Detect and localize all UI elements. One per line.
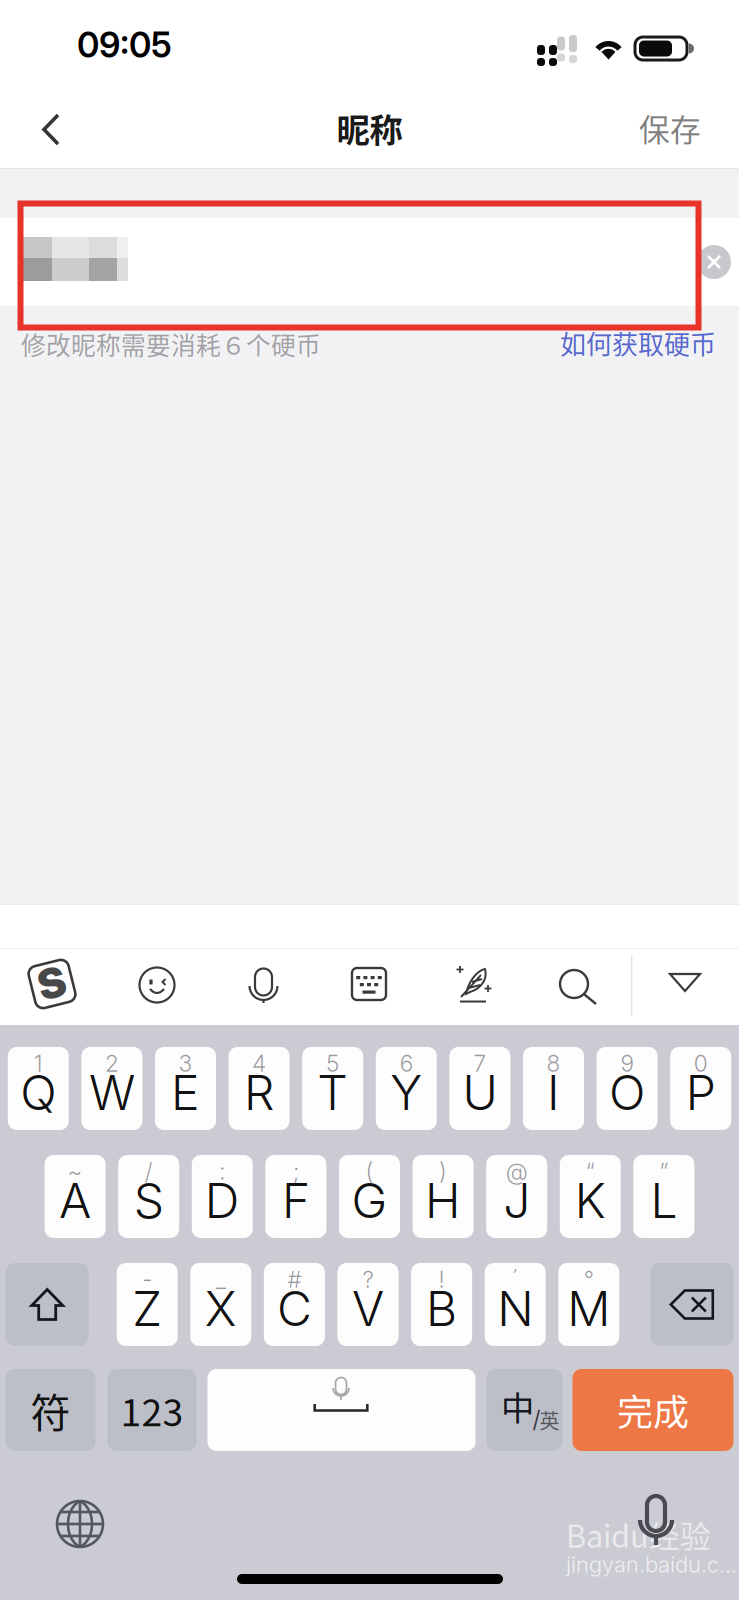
button[interactable]: ; xyxy=(265,1155,326,1238)
button[interactable]: ´ xyxy=(485,1263,546,1346)
staticText: ( xyxy=(365,1158,373,1185)
button[interactable]: 1 xyxy=(8,1047,69,1130)
staticText: B xyxy=(426,1279,457,1338)
button[interactable]: 8 xyxy=(523,1047,584,1130)
staticText: 如何获取硬币 xyxy=(560,324,716,362)
staticText: 8 xyxy=(546,1050,560,1077)
button[interactable]: Space xyxy=(207,1369,475,1451)
button[interactable]: 如何获取硬币 xyxy=(556,325,716,361)
button[interactable] xyxy=(650,1263,733,1346)
staticText: 中 xyxy=(501,1382,534,1430)
staticText: P xyxy=(686,1063,716,1122)
staticText: 完成 xyxy=(617,1384,689,1436)
staticText: jingyan.baidu.com xyxy=(566,1551,739,1578)
staticText: V xyxy=(352,1279,384,1338)
staticText: ” xyxy=(659,1158,668,1185)
button[interactable]: ) xyxy=(413,1155,474,1238)
button[interactable]: - xyxy=(117,1263,178,1346)
button[interactable]: Voice input xyxy=(249,965,279,1004)
button[interactable]: Back xyxy=(38,105,94,161)
button[interactable]: 6 xyxy=(376,1047,437,1130)
button[interactable]: 4 xyxy=(229,1047,290,1130)
button[interactable]: : xyxy=(192,1155,253,1238)
button[interactable]: Clear text xyxy=(690,238,738,286)
staticText: “ xyxy=(586,1158,595,1185)
button[interactable]: Sogou input method xyxy=(27,959,77,1009)
staticText: W xyxy=(89,1063,135,1122)
button[interactable]: Search xyxy=(558,968,598,1006)
staticText: ! xyxy=(439,1266,445,1293)
staticText: ) xyxy=(439,1158,447,1185)
button[interactable]: # xyxy=(264,1263,325,1346)
button[interactable]: 123 xyxy=(107,1369,196,1451)
button[interactable]: 符 xyxy=(5,1369,95,1451)
button[interactable] xyxy=(6,1263,89,1346)
button[interactable]: ~ xyxy=(45,1155,106,1238)
button[interactable]: @ xyxy=(486,1155,547,1238)
staticText: C xyxy=(277,1279,312,1338)
staticText: / xyxy=(145,1158,153,1185)
staticText: ´ xyxy=(512,1266,519,1293)
staticText: 5 xyxy=(326,1050,339,1077)
staticText: ~ xyxy=(68,1158,83,1185)
staticText: K xyxy=(575,1171,606,1230)
button[interactable]: 0 xyxy=(670,1047,731,1130)
staticText: S xyxy=(38,958,66,1008)
button[interactable]: 5 xyxy=(302,1047,363,1130)
staticText: 6 xyxy=(400,1050,413,1077)
button[interactable]: ” xyxy=(633,1155,694,1238)
staticText: 7 xyxy=(473,1050,486,1077)
staticText: @ xyxy=(506,1158,528,1185)
staticText: G xyxy=(351,1171,387,1230)
staticText: R xyxy=(244,1063,274,1122)
staticText: Y xyxy=(390,1063,422,1122)
button[interactable]: ° xyxy=(558,1263,619,1346)
button[interactable]: 9 xyxy=(597,1047,658,1130)
button[interactable]: ( xyxy=(339,1155,400,1238)
button[interactable]: Emoji xyxy=(138,966,176,1004)
button[interactable]: ? xyxy=(337,1263,398,1346)
staticText: 修改昵称需要消耗６个硬币 xyxy=(21,326,321,362)
staticText: A xyxy=(59,1171,91,1230)
staticText: 保存 xyxy=(639,106,701,150)
button[interactable]: 3 xyxy=(155,1047,216,1130)
button[interactable]: Handwriting xyxy=(455,964,493,1004)
button[interactable]: Hide keyboard xyxy=(668,971,702,995)
button[interactable]: 2 xyxy=(81,1047,142,1130)
button[interactable]: 保存 xyxy=(620,104,720,152)
staticText: 4 xyxy=(252,1050,266,1077)
button[interactable]: Keyboard layout xyxy=(352,968,386,1000)
staticText: U xyxy=(462,1063,497,1122)
button[interactable]: “ xyxy=(560,1155,621,1238)
staticText: M xyxy=(567,1279,610,1338)
staticText: - xyxy=(142,1266,152,1293)
staticText: ; xyxy=(293,1158,299,1185)
staticText: H xyxy=(425,1171,461,1230)
staticText: S xyxy=(134,1171,164,1230)
button[interactable]: Switch keyboard xyxy=(55,1499,105,1549)
button[interactable]: ! xyxy=(411,1263,472,1346)
button[interactable]: / xyxy=(118,1155,179,1238)
staticText: T xyxy=(317,1063,348,1122)
staticText: Z xyxy=(132,1279,162,1338)
staticText: ? xyxy=(362,1266,373,1293)
staticText: 9 xyxy=(621,1050,634,1077)
staticText: F xyxy=(282,1171,310,1230)
button[interactable]: 7 xyxy=(449,1047,510,1130)
staticText: N xyxy=(497,1279,533,1338)
staticText: 09:05 xyxy=(77,24,172,66)
button[interactable]: 完成 xyxy=(572,1369,733,1451)
staticText: O xyxy=(609,1063,645,1122)
staticText: D xyxy=(205,1171,240,1230)
staticText: 0 xyxy=(694,1050,708,1077)
staticText: ° xyxy=(584,1266,594,1293)
button[interactable]: _ xyxy=(190,1263,251,1346)
button[interactable]: Dictate xyxy=(638,1493,676,1549)
staticText: 英 xyxy=(539,1405,559,1434)
button[interactable]: 中 xyxy=(486,1369,562,1451)
staticText: Baidu经验 xyxy=(566,1512,711,1557)
staticText: X xyxy=(205,1279,237,1338)
staticText: 2 xyxy=(105,1050,119,1077)
staticText: 1 xyxy=(34,1050,43,1077)
staticText: : xyxy=(219,1158,225,1185)
